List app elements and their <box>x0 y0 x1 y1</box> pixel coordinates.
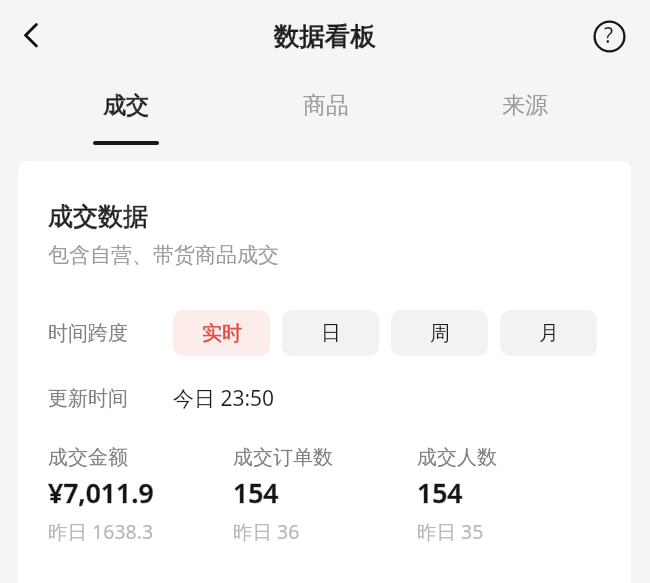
staticText: 周 <box>430 321 450 346</box>
staticText: 月 <box>539 321 559 346</box>
staticText: 商品 <box>303 91 349 120</box>
button[interactable]: 月 <box>500 310 597 356</box>
button[interactable]: 周 <box>391 310 488 356</box>
button[interactable]: 成交 <box>26 72 226 150</box>
staticText: 154 <box>417 475 463 511</box>
staticText: 数据看板 <box>274 20 376 52</box>
staticText: ¥7,011.9 <box>48 475 154 511</box>
staticText: ¥7,011.9 <box>48 475 154 511</box>
staticText: 实时 <box>202 321 242 346</box>
button[interactable]: 日 <box>282 310 379 356</box>
staticText: 昨日 36 <box>233 518 300 545</box>
staticText: ? <box>604 21 614 50</box>
staticText: 成交人数 <box>417 445 497 470</box>
staticText: 更新时间 <box>48 386 128 411</box>
staticText: 日 <box>321 321 341 346</box>
staticText: 昨日 35 <box>417 518 484 545</box>
button[interactable]: Back <box>5 9 57 61</box>
staticText: 154 <box>233 475 279 511</box>
staticText: 成交 <box>103 91 149 120</box>
staticText: 成交 <box>103 91 149 120</box>
button[interactable]: 实时 <box>173 310 270 356</box>
staticText: 成交数据 <box>48 201 148 232</box>
button[interactable]: Help <box>587 14 631 58</box>
staticText: 成交金额 <box>48 445 128 470</box>
staticText: 154 <box>233 475 279 511</box>
staticText: 154 <box>417 475 463 511</box>
staticText: 实时 <box>202 321 242 346</box>
staticText: 昨日 1638.3 <box>48 518 154 545</box>
button[interactable]: 商品 <box>226 72 425 150</box>
staticText: 今日 23:50 <box>173 384 275 413</box>
staticText: 数据看板 <box>274 20 376 52</box>
staticText: 时间跨度 <box>48 321 128 346</box>
staticText: 成交数据 <box>48 201 148 232</box>
staticText: 来源 <box>502 91 548 120</box>
staticText: 成交订单数 <box>233 445 333 470</box>
button[interactable]: 来源 <box>425 72 624 150</box>
staticText: 包含自营、带货商品成交 <box>48 242 279 268</box>
